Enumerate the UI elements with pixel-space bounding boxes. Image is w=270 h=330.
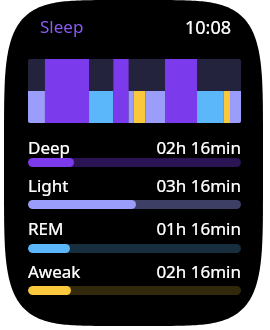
staticText: 02h 16min bbox=[28, 136, 241, 159]
staticText: Aweak bbox=[28, 260, 81, 283]
staticText: Sleep bbox=[40, 15, 84, 38]
button[interactable]: Sleep bbox=[34, 10, 90, 43]
button[interactable]: Sleep stages timeline bbox=[28, 59, 241, 123]
staticText: 10:08 bbox=[185, 15, 232, 40]
button[interactable] bbox=[28, 213, 241, 256]
staticText: Deep bbox=[28, 136, 71, 159]
staticText: 01h 16min bbox=[28, 217, 241, 240]
staticText: REM bbox=[28, 217, 64, 240]
staticText: 02h 16min bbox=[28, 260, 241, 283]
button[interactable] bbox=[28, 170, 241, 212]
staticText: 03h 16min bbox=[28, 174, 241, 197]
staticText: Light bbox=[28, 174, 69, 197]
button[interactable] bbox=[28, 256, 241, 299]
button[interactable] bbox=[28, 132, 241, 171]
